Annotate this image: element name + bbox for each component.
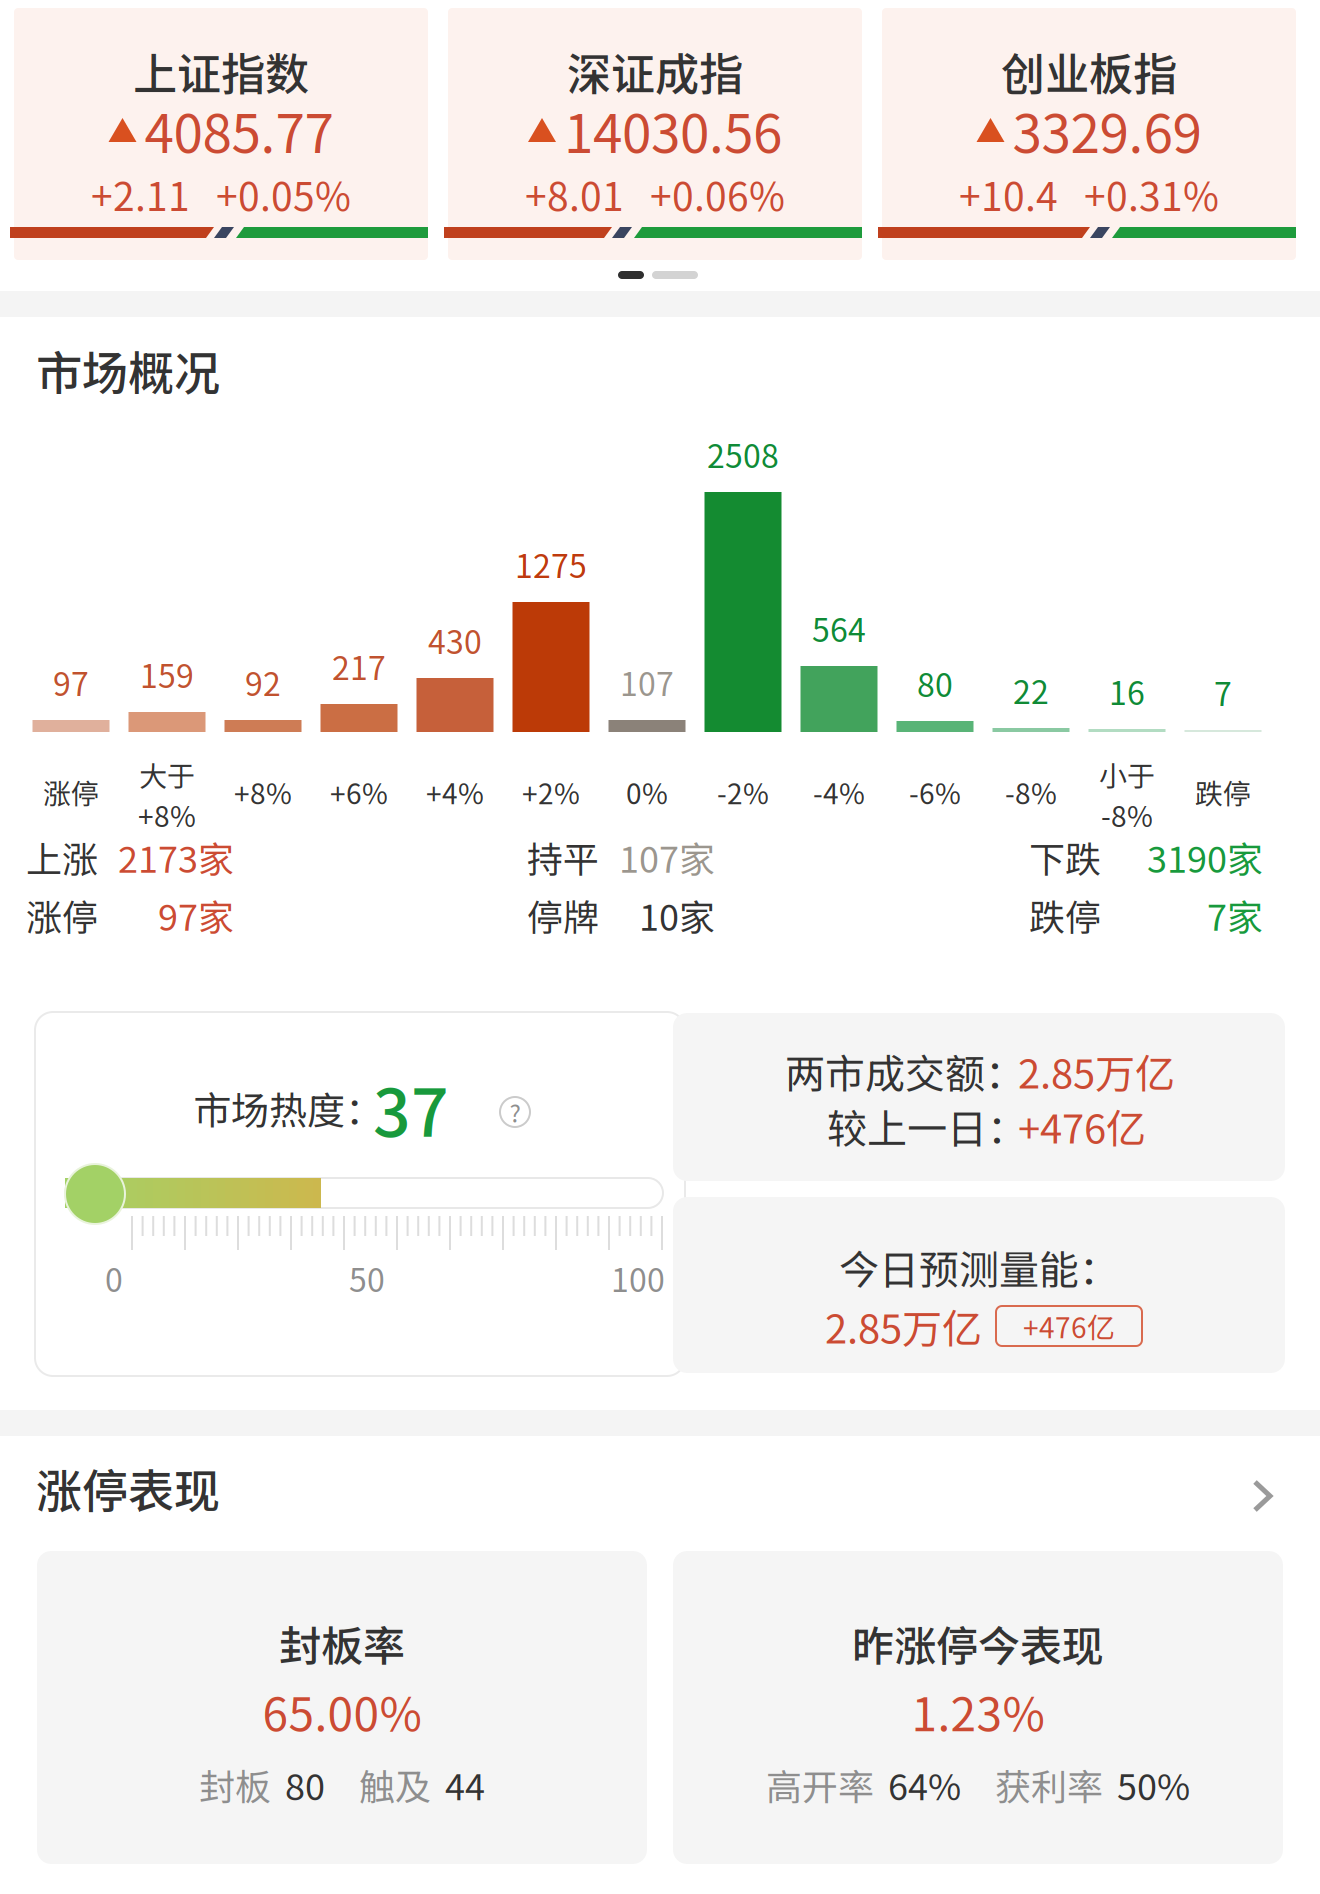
staticText: 2508: [707, 431, 779, 477]
staticText: 下跌: [1029, 831, 1101, 883]
staticText: 大于: [139, 754, 195, 794]
staticText: 上证指数: [133, 39, 309, 103]
staticText: 高开率: [766, 1758, 874, 1810]
staticText: +2%: [522, 772, 580, 812]
staticText: -8%: [1101, 794, 1153, 835]
staticText: +0.31%: [1084, 166, 1219, 222]
staticText: 涨停: [43, 772, 99, 812]
staticText: 107: [620, 659, 674, 705]
staticText: 持平: [527, 831, 599, 883]
staticText: 50%: [1117, 1758, 1190, 1810]
staticText: 较上一日：: [827, 1097, 1027, 1155]
staticText: +10.4: [959, 166, 1058, 222]
staticText: +8%: [234, 772, 292, 812]
staticText: +0.06%: [650, 166, 785, 222]
staticText: +8.01: [525, 166, 624, 222]
staticText: 小于: [1099, 754, 1155, 794]
staticText: 涨停表现: [36, 1455, 220, 1521]
staticText: 217: [332, 643, 386, 689]
staticText: 92: [245, 659, 281, 705]
staticText: 0%: [626, 772, 668, 812]
staticText: +476亿: [1018, 1097, 1146, 1155]
staticText: -6%: [909, 772, 961, 812]
button[interactable]: 涨停表现: [36, 1453, 1280, 1523]
staticText: 64%: [888, 1758, 961, 1810]
staticText: 159: [140, 651, 194, 697]
staticText: 2173家: [118, 831, 234, 883]
staticText: 跌停: [1029, 889, 1101, 941]
staticText: 两市成交额：: [785, 1042, 1025, 1100]
staticText: 4085.77: [144, 92, 333, 168]
staticText: 3329.69: [1012, 92, 1201, 168]
staticText: +6%: [330, 772, 388, 812]
staticText: 22: [1013, 667, 1049, 713]
staticText: 2.85万亿: [825, 1297, 982, 1355]
staticText: 80: [917, 660, 953, 706]
staticText: +4%: [426, 772, 484, 812]
button[interactable]: 上证指数: [16, 8, 430, 260]
button[interactable]: 深证成指: [450, 8, 864, 260]
staticText: 0: [105, 1255, 123, 1301]
staticText: 7: [1214, 669, 1232, 715]
staticText: 上涨: [26, 831, 98, 883]
staticText: 昨涨停今表现: [852, 1613, 1104, 1674]
staticText: 深证成指: [567, 39, 743, 103]
staticText: 获利率: [995, 1758, 1103, 1810]
staticText: 16: [1109, 668, 1145, 714]
staticText: 市场概况: [36, 337, 220, 403]
staticText: 37: [373, 1060, 449, 1156]
staticText: +0.05%: [216, 166, 351, 222]
staticText: 50: [349, 1255, 385, 1301]
staticText: 创业板指: [1001, 39, 1177, 103]
button[interactable]: 创业板指: [884, 8, 1298, 260]
staticText: 3190家: [1147, 831, 1263, 883]
staticText: 触及: [359, 1758, 431, 1810]
staticText: 10家: [639, 889, 715, 941]
staticText: 封板: [199, 1758, 271, 1810]
staticText: 1.23%: [911, 1678, 1044, 1744]
staticText: 14030.56: [564, 92, 782, 168]
staticText: 100: [611, 1255, 665, 1301]
staticText: -2%: [717, 772, 769, 812]
staticText: 44: [445, 1758, 485, 1810]
staticText: -8%: [1005, 772, 1057, 812]
staticText: ?: [509, 1095, 520, 1129]
staticText: 564: [812, 605, 866, 651]
staticText: 封板率: [279, 1613, 405, 1674]
staticText: 430: [428, 617, 482, 663]
staticText: 65.00%: [262, 1678, 421, 1744]
staticText: -4%: [813, 772, 865, 812]
staticText: 市场热度：: [193, 1080, 383, 1135]
staticText: 97家: [158, 889, 234, 941]
staticText: +8%: [138, 794, 196, 835]
staticText: 涨停: [26, 889, 98, 941]
staticText: 97: [53, 659, 89, 705]
staticText: 今日预测量能：: [839, 1238, 1119, 1296]
staticText: 2.85万亿: [1018, 1042, 1175, 1100]
staticText: 跌停: [1195, 772, 1251, 812]
staticText: 107家: [619, 831, 715, 883]
staticText: 停牌: [527, 889, 599, 941]
staticText: 1275: [515, 541, 587, 587]
staticText: +476亿: [1023, 1306, 1115, 1346]
staticText: +2.11: [91, 166, 190, 222]
staticText: 7家: [1207, 889, 1263, 941]
staticText: 80: [285, 1758, 325, 1810]
